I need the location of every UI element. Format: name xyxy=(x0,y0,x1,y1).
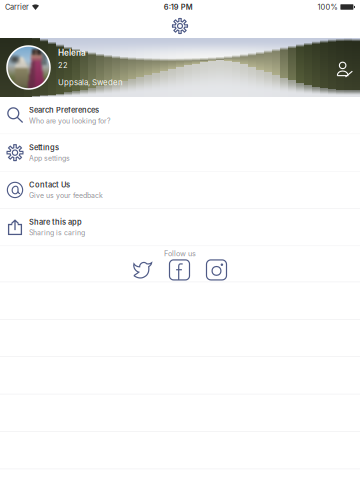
button[interactable]: Search Preferences xyxy=(0,97,360,134)
staticText: Search Preferences xyxy=(29,106,99,115)
staticText: Contact Us xyxy=(29,180,70,189)
staticText: Give us your feedback xyxy=(29,191,103,200)
button[interactable]: Contact Us xyxy=(0,172,360,209)
staticText: 22 xyxy=(58,61,68,70)
button[interactable]: Twitter xyxy=(133,260,152,279)
button[interactable]: Share this app xyxy=(0,209,360,246)
staticText: Uppsala, Sweden xyxy=(58,78,123,87)
staticText: Sharing is caring xyxy=(29,229,85,237)
staticText: Who are you looking for? xyxy=(29,117,111,125)
button[interactable]: Settings xyxy=(172,18,188,34)
staticText: 100% xyxy=(317,2,337,11)
staticText: 6:19 PM xyxy=(164,2,193,11)
button[interactable]: Instagram xyxy=(206,260,226,280)
staticText: Carrier xyxy=(5,2,29,11)
button[interactable]: Edit profile xyxy=(335,57,360,78)
staticText: App settings xyxy=(29,154,70,162)
staticText: Settings xyxy=(29,143,59,152)
staticText: Follow us xyxy=(164,249,196,258)
staticText: Share this app xyxy=(29,217,82,226)
staticText: Helena xyxy=(58,48,86,58)
button[interactable]: Facebook xyxy=(169,260,189,280)
button[interactable]: Settings xyxy=(0,134,360,172)
